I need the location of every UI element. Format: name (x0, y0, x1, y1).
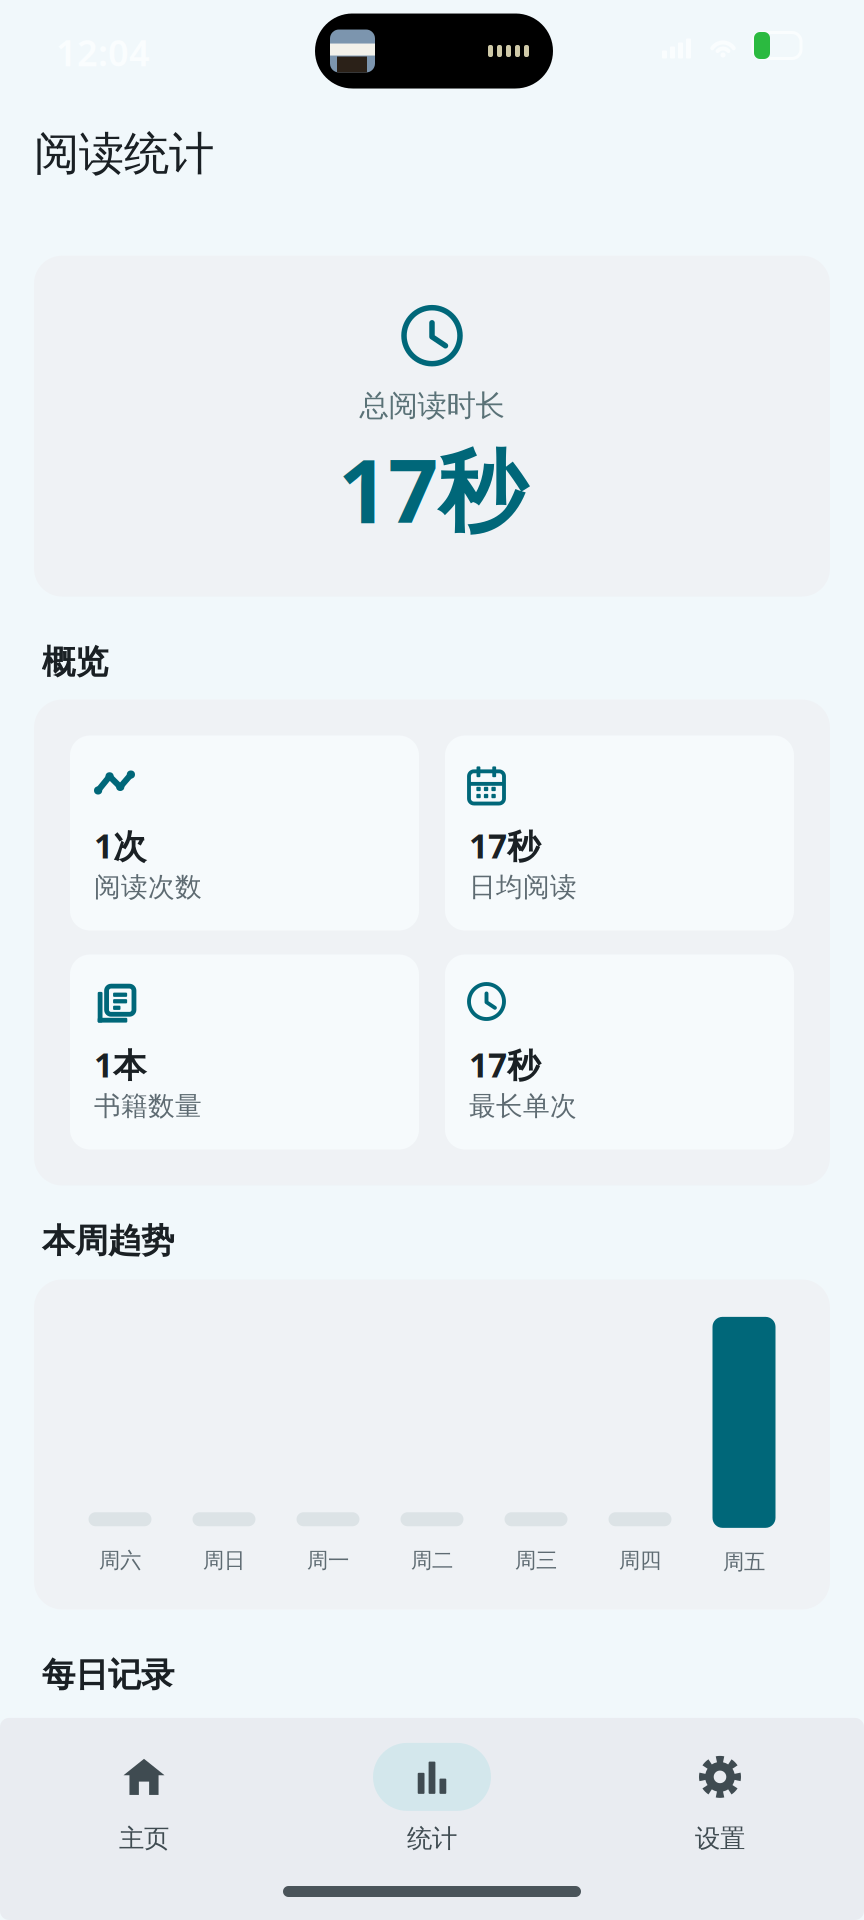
staticText: 阅读统计 (34, 126, 214, 182)
staticText: 总阅读时长 (359, 388, 504, 424)
staticText: 周四 (619, 1547, 661, 1573)
staticText: 概览 (42, 642, 108, 682)
staticText: 周三 (515, 1547, 557, 1573)
staticText: 17秒 (469, 1042, 540, 1087)
staticText: 17秒 (338, 431, 526, 548)
staticText: 1本 (94, 1042, 146, 1087)
staticText: 周一 (307, 1547, 349, 1573)
staticText: 12:04 (56, 28, 150, 76)
button[interactable]: 设置 (576, 1743, 864, 1854)
button[interactable]: 1本 (70, 954, 419, 1149)
staticText: 周日 (203, 1547, 245, 1573)
staticText: 1次 (94, 823, 146, 868)
staticText: 最长单次 (469, 1090, 577, 1123)
staticText: 书籍数量 (94, 1090, 202, 1123)
staticText: 阅读次数 (94, 871, 202, 904)
button[interactable]: 1次 (70, 735, 419, 930)
staticText: 日均阅读 (469, 871, 577, 904)
button[interactable]: 统计 (288, 1743, 576, 1854)
button[interactable]: 主页 (0, 1743, 288, 1854)
staticText: 主页 (119, 1823, 169, 1854)
staticText: 17秒 (469, 823, 540, 868)
staticText: 周二 (411, 1547, 453, 1573)
staticText: 设置 (695, 1823, 745, 1854)
staticText: 周六 (99, 1547, 141, 1573)
staticText: 统计 (407, 1823, 457, 1854)
button[interactable]: 17秒 (445, 954, 794, 1149)
staticText: 本周趋势 (42, 1220, 174, 1261)
button[interactable]: 17秒 (445, 735, 794, 930)
staticText: 每日记录 (42, 1654, 174, 1695)
staticText: 周五 (723, 1549, 765, 1575)
